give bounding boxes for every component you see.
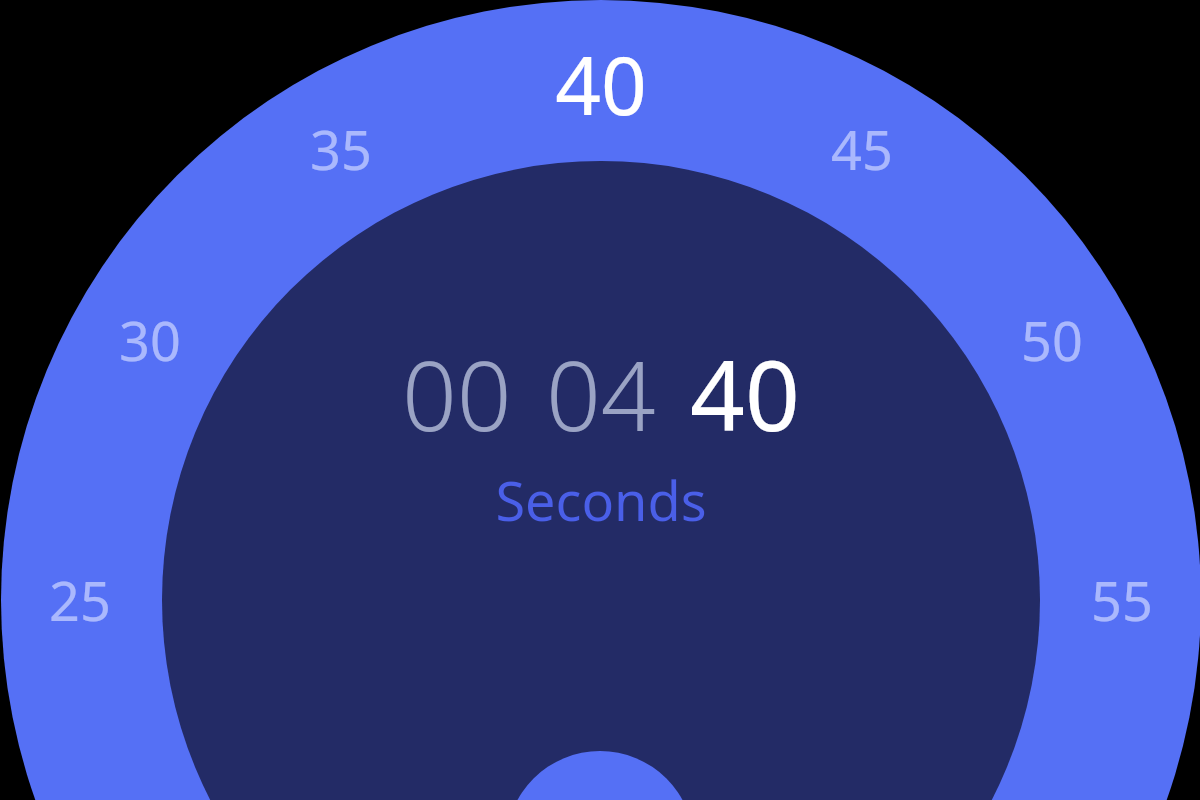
staticText: 04 [546, 328, 656, 459]
staticText: 35 [310, 112, 372, 186]
staticText: Seconds [495, 463, 707, 537]
staticText: 25 [49, 563, 111, 637]
staticText: 30 [119, 303, 181, 377]
staticText: 00 [402, 328, 512, 459]
button[interactable]: Seconds picker, 40 selected [0, 0, 1200, 800]
staticText: 50 [1021, 303, 1083, 377]
staticText: 45 [831, 112, 893, 186]
staticText: 40 [690, 328, 800, 459]
staticText: 55 [1091, 563, 1153, 637]
button[interactable]: 40 seconds, selected [555, 29, 647, 138]
staticText: 40 [555, 29, 647, 138]
